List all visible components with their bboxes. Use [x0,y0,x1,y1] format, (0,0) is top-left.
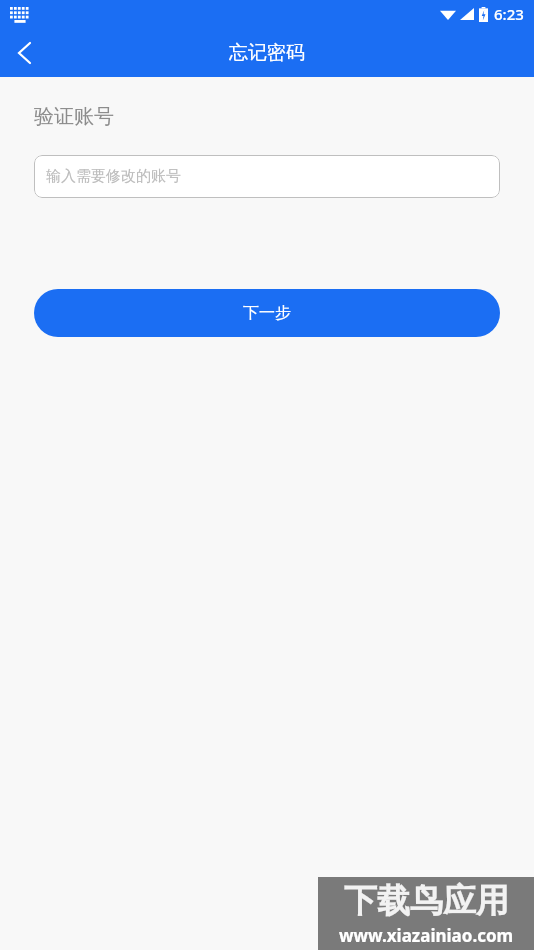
staticText: 6:23 [494,4,524,24]
staticText: 忘记密码 [229,41,305,65]
staticText: www.xiazainiao.com [339,924,514,947]
staticText: 验证账号 [34,104,114,129]
staticText: 输入需要修改的账号 [46,167,181,186]
button[interactable]: 下一步 [34,289,500,337]
staticText: 下一步 [243,303,291,323]
button[interactable]: 输入需要修改的账号 [34,155,500,198]
staticText: 下载鸟应用 [344,880,509,922]
button[interactable]: Back [0,29,48,77]
